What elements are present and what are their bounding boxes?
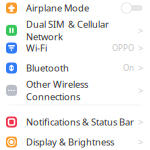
staticText: > (138, 136, 143, 148)
staticText: Airplane Mode (26, 2, 89, 14)
button[interactable]: Notifications & Status Bar (0, 112, 150, 132)
staticText: > (138, 24, 143, 37)
staticText: On (123, 63, 134, 73)
staticText: Dual SIM & Cellular Network (26, 18, 109, 43)
staticText: > (138, 62, 143, 74)
button[interactable]: Airplane Mode (0, 0, 150, 18)
button[interactable]: Bluetooth (0, 58, 150, 78)
staticText: OPPO (112, 43, 134, 53)
staticText: Display & Brightness (26, 136, 114, 148)
staticText: Bluetooth (26, 62, 69, 74)
button[interactable]: Display & Brightness (0, 132, 150, 150)
button[interactable]: Dual SIM & Cellular Network (0, 18, 150, 38)
button[interactable]: Wi-Fi (0, 38, 150, 58)
staticText: Wi-Fi (26, 42, 47, 54)
staticText: Notifications & Status Bar (26, 116, 134, 128)
staticText: > (138, 84, 143, 97)
button[interactable]: Other Wireless Connections (0, 78, 150, 98)
staticText: > (138, 42, 143, 54)
staticText: Other Wireless Connections (26, 78, 88, 103)
staticText: > (138, 116, 143, 128)
